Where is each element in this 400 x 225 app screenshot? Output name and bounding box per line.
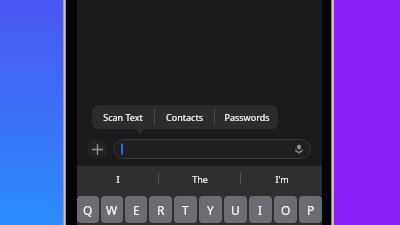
button[interactable]: P [299, 196, 322, 223]
button[interactable]: W [101, 196, 123, 223]
staticText: I [258, 202, 263, 218]
button[interactable]: Scan Text [92, 105, 154, 129]
button[interactable]: U [224, 196, 247, 223]
staticText: E [133, 202, 140, 218]
staticText: I [116, 173, 120, 185]
button[interactable]: I [77, 166, 158, 191]
staticText: Contacts [166, 111, 203, 123]
button[interactable]: I'm [241, 166, 322, 191]
staticText: Passwords [224, 111, 270, 123]
button[interactable]: The [159, 166, 240, 191]
button[interactable]: O [274, 196, 297, 223]
staticText: W [106, 202, 118, 218]
staticText: U [231, 202, 240, 218]
button[interactable]: T [174, 196, 197, 223]
button[interactable]: Voice input [291, 141, 307, 157]
staticText: Y [207, 202, 214, 218]
button[interactable]: Passwords [215, 105, 278, 129]
button[interactable]: E [125, 196, 147, 223]
staticText: P [307, 202, 315, 218]
staticText: Scan Text [103, 111, 143, 123]
button[interactable]: Add attachment [87, 139, 107, 159]
staticText: I'm [275, 173, 289, 185]
button[interactable]: R [149, 196, 172, 223]
button[interactable]: Contacts [155, 105, 214, 129]
staticText: Q [83, 202, 93, 218]
staticText: T [182, 202, 189, 218]
staticText: R [157, 202, 165, 218]
button[interactable]: I [249, 196, 272, 223]
staticText: O [281, 202, 291, 218]
button[interactable]: Q [77, 196, 99, 223]
button[interactable]: Y [199, 196, 222, 223]
staticText: The [192, 173, 208, 185]
button[interactable]: Voice input [113, 139, 311, 159]
